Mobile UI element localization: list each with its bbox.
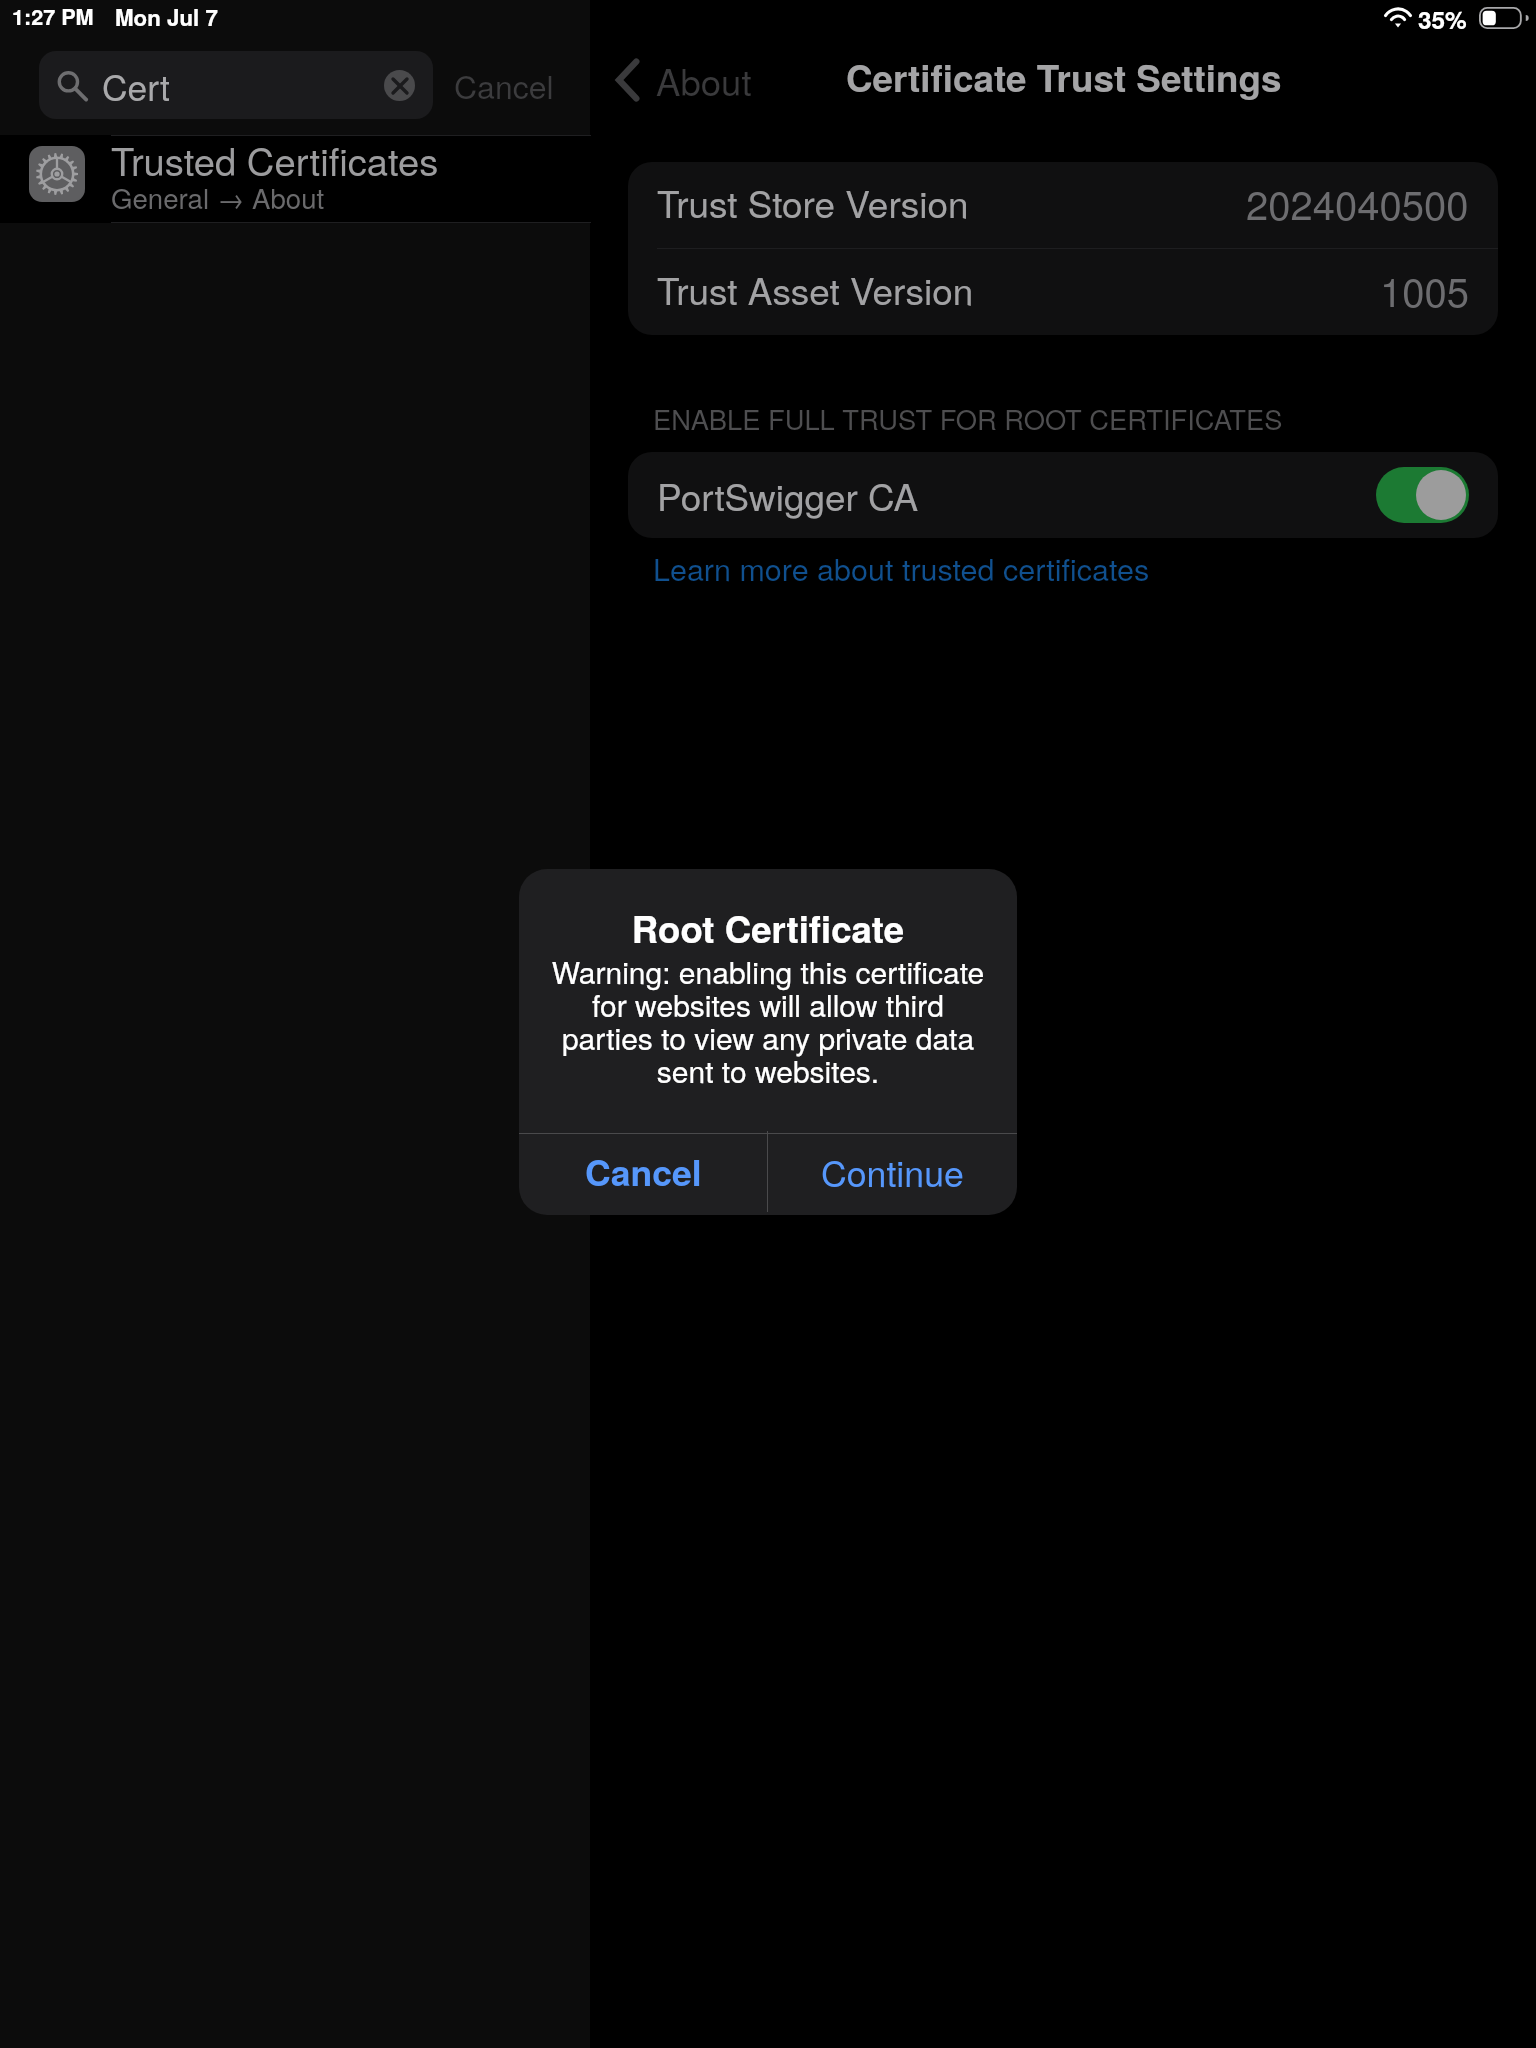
staticText: About [656,54,752,106]
staticText: Cert [102,60,170,111]
staticText: Trust Store Version [657,176,969,229]
button[interactable]: Learn more about trusted certificates [653,546,1150,590]
staticText: 1:27 PM [12,1,94,32]
button[interactable]: Cancel [519,1131,767,1212]
button[interactable]: Cert [39,51,433,119]
button[interactable]: Enable full trust for PortSwigger CA [1376,467,1469,523]
button[interactable]: Trust Store Version [628,162,1498,248]
staticText: Warning: enabling this certificate for w… [519,950,1017,1092]
staticText: PortSwigger CA [657,469,919,522]
button[interactable]: Trust Asset Version [628,249,1498,335]
button[interactable]: PortSwigger CA [628,452,1498,538]
button[interactable]: Cancel [444,51,564,119]
button[interactable]: Continue [768,1131,1017,1212]
staticText: Cancel [454,62,554,108]
button[interactable]: Back to About [601,46,765,108]
staticText: Learn more about trusted certificates [653,546,1150,590]
button[interactable]: Trusted Certificates [0,135,590,223]
staticText: 35% [1418,2,1467,37]
staticText: Mon Jul 7 [115,1,218,33]
staticText: General → About [111,177,325,217]
staticText: Trusted Certificates [111,132,439,187]
staticText: ENABLE FULL TRUST FOR ROOT CERTIFICATES [653,399,1283,438]
staticText: 2024040500 [1246,174,1469,231]
staticText: 1005 [1380,261,1469,318]
staticText: Root Certificate [519,902,1017,954]
staticText: Certificate Trust Settings [846,51,1282,104]
staticText: Continue [821,1146,964,1197]
button[interactable]: Clear search text [384,70,415,101]
staticText: Cancel [585,1146,702,1197]
staticText: Trust Asset Version [657,263,974,316]
